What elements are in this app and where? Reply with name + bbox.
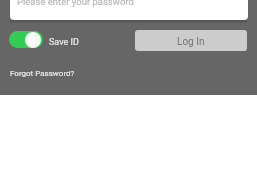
button[interactable]: Log In — [135, 30, 247, 51]
staticText: Save ID — [49, 37, 79, 48]
button[interactable]: Save ID — [9, 31, 79, 48]
button[interactable]: Please enter your password — [10, 0, 248, 20]
staticText: Log In — [177, 36, 205, 48]
staticText: Forgot Password? — [10, 69, 75, 78]
button[interactable]: Forgot Password? — [10, 69, 75, 78]
staticText: Please enter your password — [17, 0, 134, 7]
